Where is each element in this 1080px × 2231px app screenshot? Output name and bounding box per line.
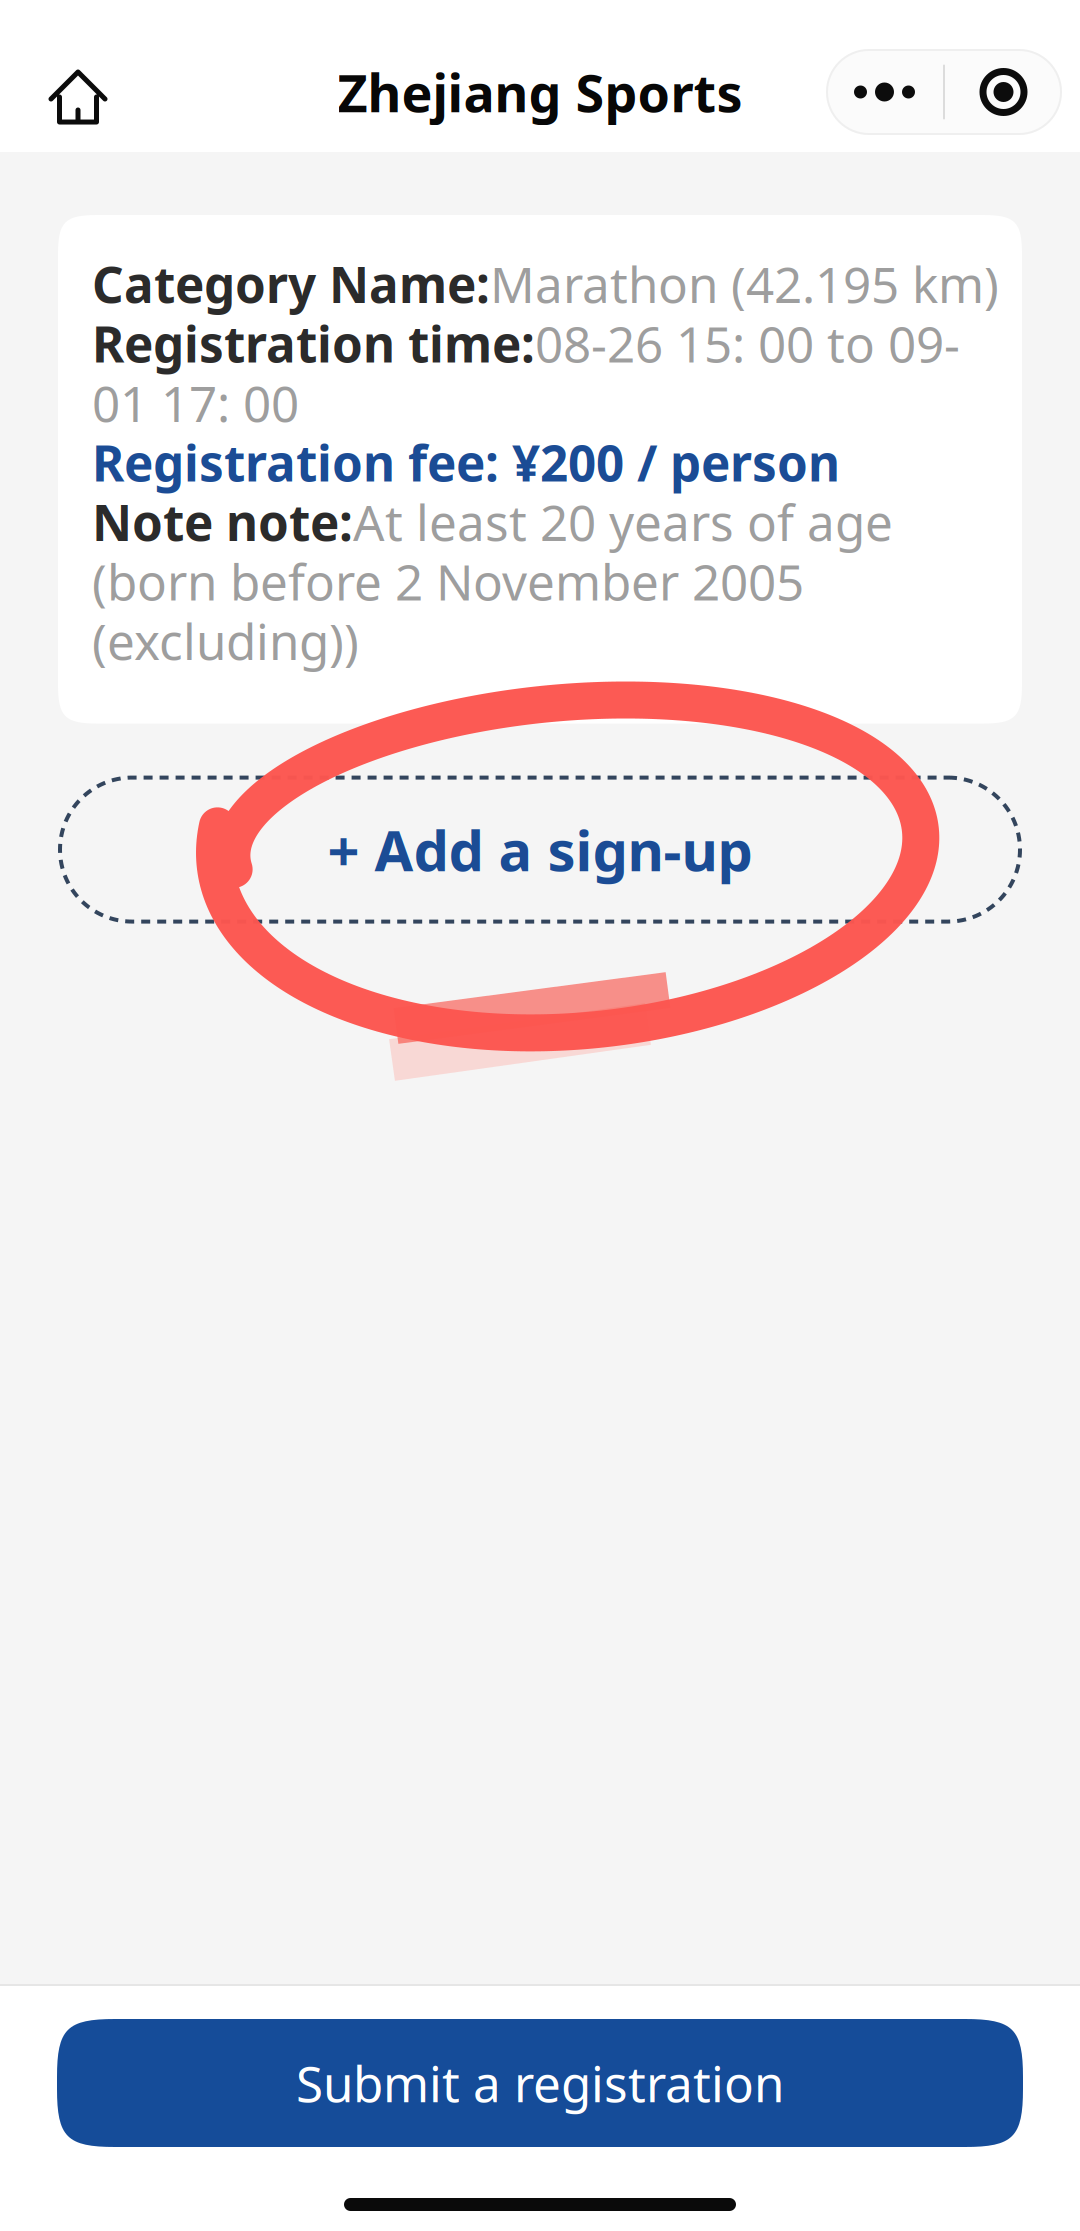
staticText: Zhejiang Sports (337, 57, 742, 127)
staticText: Registration fee: ¥200 / person (92, 429, 840, 495)
button[interactable]: + Add a sign-up (58, 776, 1022, 924)
staticText: Category Name:Marathon (42.195 km) (92, 251, 999, 316)
staticText: + Add a sign-up (327, 812, 752, 887)
staticText: Note note:At least 20 years of age (born… (92, 489, 893, 673)
button[interactable]: More options (826, 49, 943, 135)
staticText: Registration time:08-26 15: 00 to 09-​01… (92, 310, 960, 435)
button[interactable]: Close mini program (945, 49, 1062, 135)
staticText: Submit a registration (296, 2050, 784, 2116)
button[interactable]: Submit a registration (57, 2019, 1023, 2147)
button[interactable]: Home (24, 44, 116, 140)
